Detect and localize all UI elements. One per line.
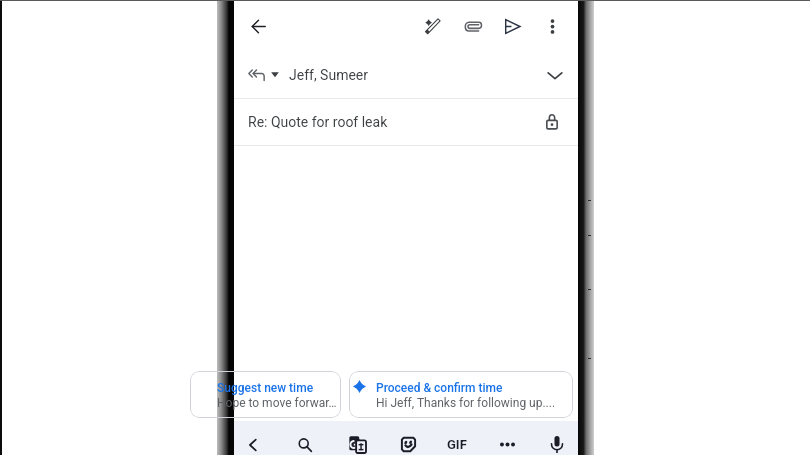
- staticText: Suggest new time: [217, 381, 314, 395]
- button[interactable]: Expand recipients: [536, 56, 574, 94]
- button[interactable]: Translate: [334, 421, 380, 455]
- button[interactable]: More: [484, 421, 530, 455]
- staticText: Jeff, Sumeer: [289, 67, 369, 83]
- staticText: Hi Jeff, Thanks for following up....: [376, 396, 556, 410]
- button[interactable]: Confidential mode: [533, 103, 571, 141]
- staticText: Hope to move forwar…: [217, 396, 337, 410]
- button[interactable]: Jeff, Sumeer: [234, 51, 578, 98]
- button[interactable]: Suggest new time: [190, 371, 341, 418]
- button[interactable]: More options: [532, 6, 572, 46]
- button[interactable]: Proceed & confirm time: [349, 371, 573, 418]
- button[interactable]: Re: Quote for roof leak: [234, 99, 578, 145]
- staticText: Proceed & confirm time: [376, 381, 503, 395]
- button[interactable]: GIF: [434, 421, 480, 455]
- button[interactable]: Help me write: [412, 6, 452, 46]
- button[interactable]: Search: [282, 421, 328, 455]
- staticText: Re: Quote for roof leak: [248, 114, 388, 130]
- button[interactable]: Voice input: [534, 421, 580, 455]
- button[interactable]: Stickers: [385, 421, 431, 455]
- staticText: GIF: [447, 437, 467, 452]
- button[interactable]: Send: [492, 6, 532, 46]
- button[interactable]: Back: [238, 6, 278, 46]
- button[interactable]: Back: [230, 421, 276, 455]
- button[interactable]: Attach file: [452, 6, 492, 46]
